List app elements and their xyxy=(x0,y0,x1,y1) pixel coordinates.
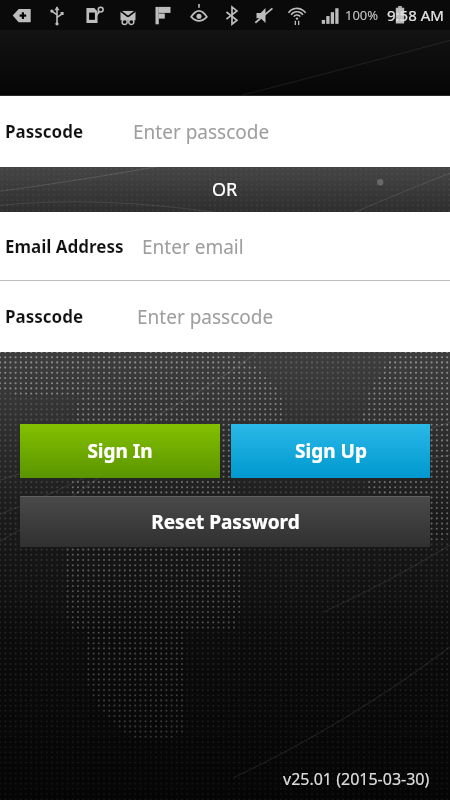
staticText: Passcode xyxy=(5,305,84,328)
staticText: Enter passcode xyxy=(137,304,274,330)
button[interactable]: Passcode xyxy=(0,281,450,352)
staticText: Email Address xyxy=(5,235,124,258)
staticText: Reset Password xyxy=(151,509,300,535)
button[interactable]: Email Address xyxy=(0,212,450,281)
staticText: Passcode xyxy=(5,120,84,143)
button[interactable]: OR xyxy=(0,167,450,212)
staticText: Sign In xyxy=(87,438,153,464)
staticText: Enter passcode xyxy=(133,119,270,145)
staticText: OR xyxy=(212,177,238,202)
staticText: v25.01 (2015-03-30) xyxy=(283,768,430,790)
button[interactable]: Sign In xyxy=(20,424,220,478)
button[interactable]: Passcode xyxy=(0,96,450,167)
staticText: 9:58 AM xyxy=(387,5,444,25)
staticText: 100% xyxy=(345,6,379,24)
button[interactable]: Sign Up xyxy=(231,424,430,478)
staticText: Sign Up xyxy=(295,438,367,464)
button[interactable]: Reset Password xyxy=(20,496,430,547)
staticText: Enter email xyxy=(142,234,244,260)
